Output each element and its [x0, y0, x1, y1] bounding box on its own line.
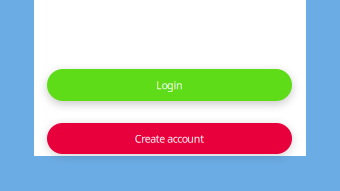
staticText: Login — [156, 78, 183, 92]
button[interactable]: Login — [47, 69, 292, 101]
staticText: Create account — [135, 131, 204, 146]
button[interactable]: Create account — [47, 123, 292, 154]
